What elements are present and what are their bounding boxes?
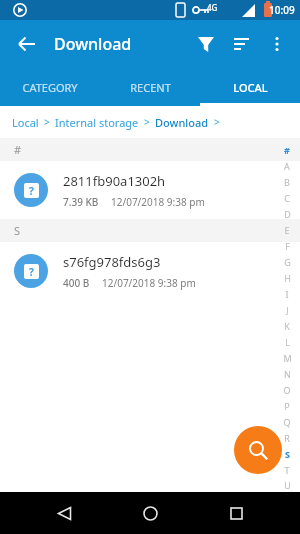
button[interactable]: T xyxy=(280,462,294,478)
staticText: H xyxy=(284,272,291,284)
staticText: > xyxy=(144,115,150,129)
button[interactable]: B xyxy=(280,174,294,190)
button[interactable]: Download xyxy=(155,115,209,130)
button[interactable]: CATEGORY xyxy=(0,68,100,106)
button[interactable]: Search xyxy=(234,426,282,474)
button[interactable]: Sort xyxy=(224,26,260,62)
staticText: J xyxy=(286,304,289,316)
staticText: Internal storage xyxy=(55,115,139,130)
button[interactable]: # xyxy=(280,142,294,158)
staticText: R xyxy=(284,432,290,444)
staticText: RECENT xyxy=(130,80,171,95)
staticText: > xyxy=(214,115,220,129)
staticText: CATEGORY xyxy=(22,80,78,95)
button[interactable]: C xyxy=(280,190,294,206)
button[interactable]: K xyxy=(280,318,294,334)
staticText: S xyxy=(285,448,290,460)
button[interactable]: L xyxy=(280,334,294,350)
button[interactable]: Local xyxy=(12,115,39,130)
button[interactable]: H xyxy=(280,270,294,286)
button[interactable]: N xyxy=(280,366,294,382)
button[interactable]: Back xyxy=(42,492,86,534)
staticText: C xyxy=(284,192,290,204)
staticText: G xyxy=(284,256,291,268)
button[interactable]: Filter xyxy=(188,26,224,62)
button[interactable]: A xyxy=(280,158,294,174)
staticText: 2811fb90a1302h xyxy=(63,172,166,190)
button[interactable]: More options xyxy=(260,27,294,61)
staticText: 400 B xyxy=(63,276,90,290)
staticText: D xyxy=(284,208,291,220)
button[interactable]: R xyxy=(280,430,294,446)
staticText: O xyxy=(283,384,291,396)
button[interactable]: Recent apps xyxy=(214,492,258,534)
staticText: F xyxy=(285,240,290,252)
button[interactable]: D xyxy=(280,206,294,222)
button[interactable]: Q xyxy=(280,414,294,430)
staticText: E xyxy=(284,224,290,236)
button[interactable]: Back xyxy=(10,27,44,61)
staticText: Download xyxy=(54,33,132,55)
staticText: B xyxy=(284,176,290,188)
staticText: Q xyxy=(283,416,291,428)
staticText: 7.39 KB xyxy=(63,195,99,209)
staticText: 4G xyxy=(207,2,218,13)
staticText: # xyxy=(14,142,22,157)
staticText: LOCAL xyxy=(233,80,268,95)
staticText: Local xyxy=(12,115,39,130)
staticText: M xyxy=(283,352,292,364)
button[interactable]: F xyxy=(280,238,294,254)
button[interactable]: P xyxy=(280,398,294,414)
staticText: K xyxy=(284,320,290,332)
button[interactable]: O xyxy=(280,382,294,398)
button[interactable]: J xyxy=(280,302,294,318)
staticText: I xyxy=(285,288,289,300)
staticText: P xyxy=(284,400,290,412)
button[interactable]: ? xyxy=(0,242,300,300)
button[interactable]: U xyxy=(280,478,294,492)
button[interactable]: LOCAL xyxy=(200,68,300,106)
button[interactable]: Home xyxy=(128,492,172,534)
staticText: s76fg978fds6g3 xyxy=(63,253,161,271)
staticText: S xyxy=(14,223,21,238)
button[interactable]: E xyxy=(280,222,294,238)
staticText: ? xyxy=(29,184,34,198)
staticText: A xyxy=(284,160,290,172)
staticText: > xyxy=(44,115,50,129)
staticText: ? xyxy=(29,265,34,279)
staticText: 12/07/2018 9:38 pm xyxy=(111,195,205,209)
staticText: 12/07/2018 9:38 pm xyxy=(102,276,196,290)
staticText: # xyxy=(284,144,290,156)
staticText: L xyxy=(285,336,290,348)
button[interactable]: M xyxy=(280,350,294,366)
staticText: Download xyxy=(155,115,209,130)
button[interactable]: S xyxy=(280,446,294,462)
staticText: N xyxy=(284,368,291,380)
button[interactable]: RECENT xyxy=(100,68,200,106)
button[interactable]: ? xyxy=(0,161,300,219)
staticText: U xyxy=(284,479,291,491)
button[interactable]: I xyxy=(280,286,294,302)
button[interactable]: Internal storage xyxy=(55,115,139,130)
button[interactable]: G xyxy=(280,254,294,270)
staticText: T xyxy=(284,464,290,476)
staticText: 10:09 xyxy=(269,3,295,17)
